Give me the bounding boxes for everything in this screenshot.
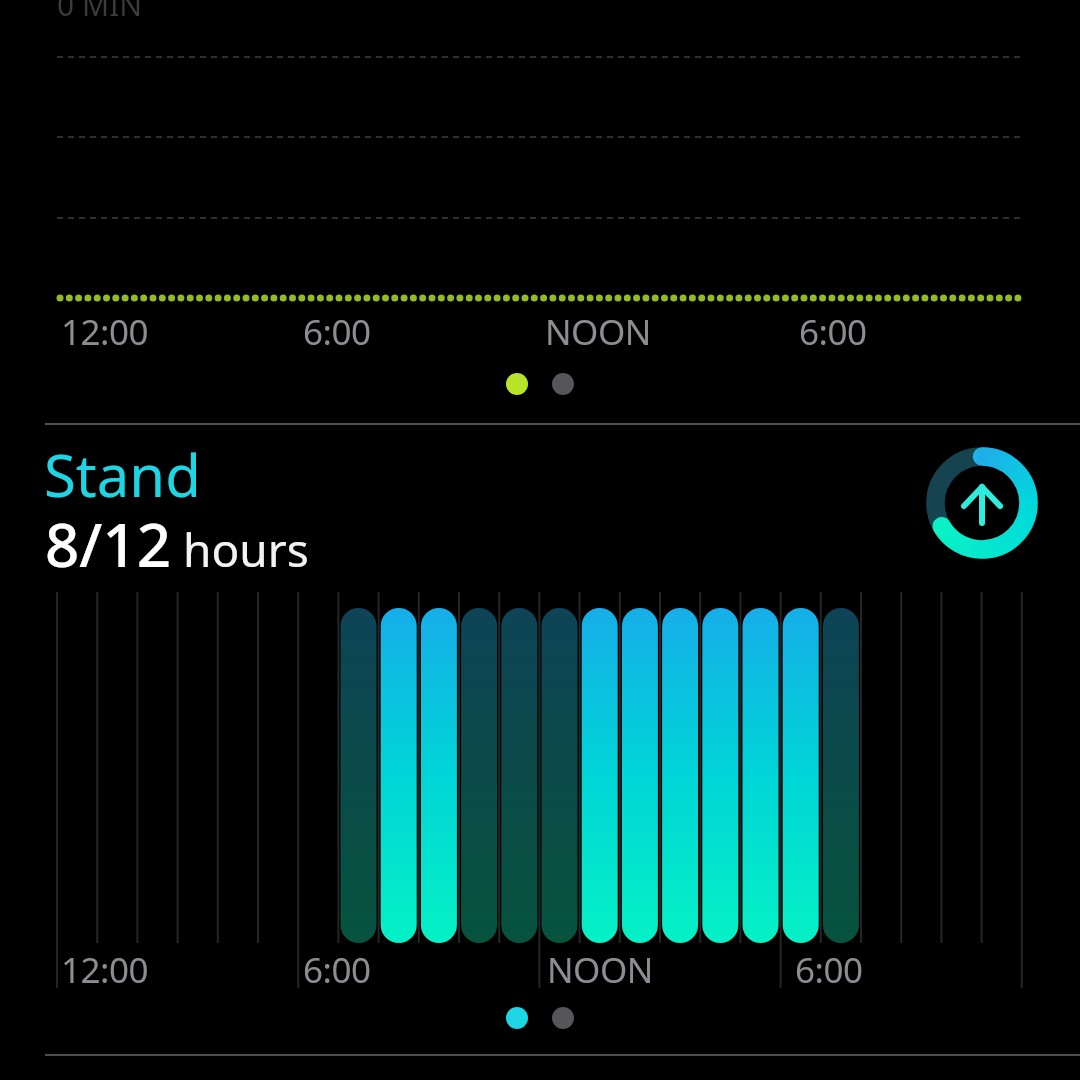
- staticText: 8/12 hours: [45, 503, 309, 585]
- staticText: 6:00: [799, 308, 867, 356]
- staticText: Stand: [44, 435, 201, 514]
- staticText: 12:00: [61, 946, 148, 994]
- staticText: 0 MIN: [57, 0, 143, 25]
- staticText: 6:00: [303, 946, 371, 994]
- staticText: 6:00: [303, 308, 371, 356]
- staticText: 6:00: [795, 946, 863, 994]
- button[interactable]: [495, 996, 587, 1040]
- staticText: NOON: [545, 308, 651, 356]
- staticText: 12:00: [61, 308, 148, 356]
- staticText: NOON: [547, 946, 653, 994]
- button[interactable]: [495, 362, 587, 406]
- button[interactable]: [925, 445, 1040, 560]
